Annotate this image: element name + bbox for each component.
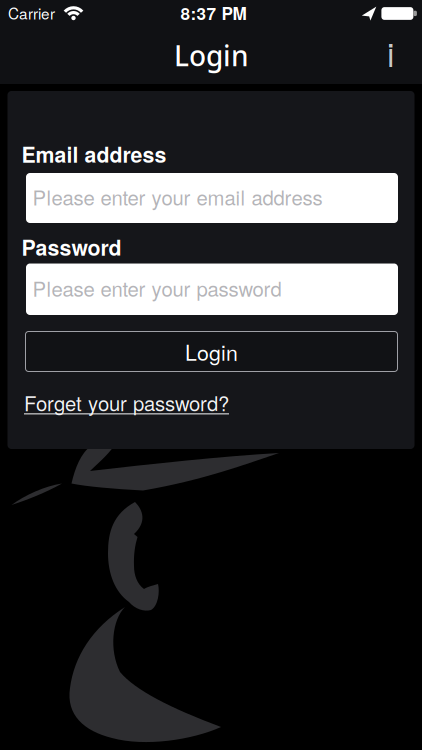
staticText: 8:37 PM bbox=[180, 1, 246, 25]
button[interactable]: Forget your password? bbox=[24, 388, 400, 417]
staticText: Password bbox=[21, 232, 121, 262]
staticText: Login bbox=[174, 37, 249, 74]
staticText: Login bbox=[185, 336, 238, 367]
staticText: Forget your password? bbox=[24, 388, 229, 417]
button[interactable]: Please enter your email address bbox=[26, 173, 398, 223]
button[interactable]: Please enter your password bbox=[26, 263, 398, 315]
staticText: Carrier bbox=[8, 2, 55, 24]
staticText: Email address bbox=[21, 139, 166, 169]
staticText: i bbox=[387, 29, 394, 76]
staticText: Please enter your email address bbox=[32, 182, 322, 211]
staticText: Please enter your password bbox=[32, 273, 281, 303]
button[interactable]: Login bbox=[25, 331, 397, 371]
button[interactable]: Info bbox=[373, 32, 407, 72]
